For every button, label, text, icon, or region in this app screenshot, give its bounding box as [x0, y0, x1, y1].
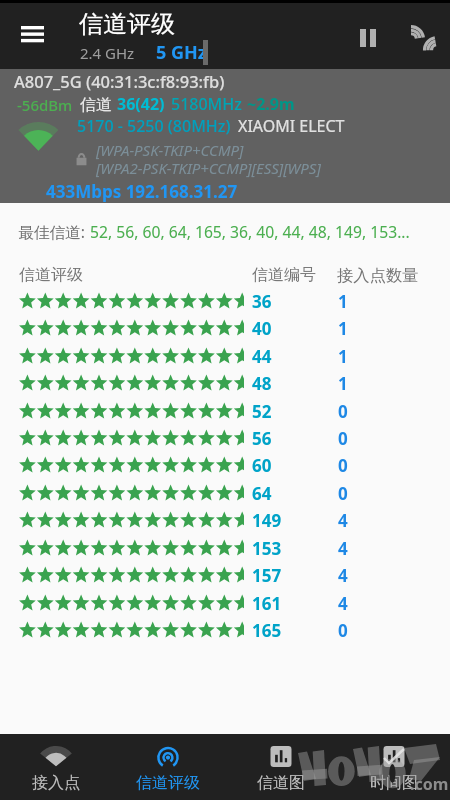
staticText: A807_5G (40:31:3c:f8:93:fb) [14, 70, 225, 92]
staticText: 接入点数量 [337, 265, 419, 286]
button[interactable]: 40 [0, 315, 450, 342]
staticText: 2.4 GHz [80, 43, 135, 63]
staticText: 36(42) [117, 93, 165, 115]
staticText: [WPA2-PSK-TKIP+CCMP][ESS][WPS] [96, 158, 321, 178]
staticText: 1 [338, 317, 348, 340]
staticText: 165 [252, 619, 282, 642]
staticText: 161 [252, 592, 282, 615]
button[interactable]: 2.4 GHz [80, 43, 135, 63]
button[interactable]: 161 [0, 590, 450, 617]
staticText: ~2.9m [247, 93, 295, 115]
button[interactable]: 60 [0, 452, 450, 479]
staticText: 157 [252, 564, 282, 587]
button[interactable]: A807_5G (40:31:3c:f8:93:fb) [0, 69, 450, 203]
button[interactable]: 56 [0, 425, 450, 452]
staticText: 4 [338, 592, 348, 615]
staticText: 52 [252, 400, 272, 423]
staticText: 信道评级 [79, 9, 175, 39]
staticText: 信道评级 [136, 773, 200, 793]
staticText: 最佳信道: [18, 221, 90, 242]
staticText: .com [410, 773, 449, 795]
staticText: 4 [338, 537, 348, 560]
staticText: 149 [252, 509, 282, 532]
button[interactable]: Pause scanning [345, 15, 391, 61]
button[interactable]: 48 [0, 370, 450, 397]
button[interactable]: 信道图 [224, 734, 337, 800]
staticText: 信道评级 [19, 265, 83, 285]
button[interactable]: 44 [0, 343, 450, 370]
button[interactable]: 149 [0, 507, 450, 534]
staticText: [WPA-PSK-TKIP+CCMP] [96, 140, 244, 160]
staticText: 0 [338, 427, 348, 450]
button[interactable]: 5 GHz [156, 40, 207, 65]
staticText: 36 [252, 290, 272, 313]
staticText: 52, 56, 60, 64, 165, 36, 40, 44, 48, 149… [90, 221, 410, 242]
staticText: 接入点 [32, 773, 80, 793]
button[interactable]: 接入点 [0, 734, 112, 800]
staticText: 64 [252, 482, 272, 505]
staticText: 0 [338, 400, 348, 423]
staticText: 5180MHz [171, 93, 242, 115]
button[interactable]: 52 [0, 398, 450, 425]
staticText: 153 [252, 537, 282, 560]
button[interactable]: 153 [0, 535, 450, 562]
staticText: 40 [252, 317, 272, 340]
staticText: 信道编号 [252, 265, 316, 285]
button[interactable]: Open navigation drawer [10, 12, 54, 56]
staticText: 1 [338, 345, 348, 368]
staticText: 4 [338, 509, 348, 532]
button[interactable]: 时间图 [337, 734, 450, 800]
staticText: 时间图 [370, 773, 418, 793]
staticText: 5170 - 5250 (80MHz) [77, 115, 231, 137]
button[interactable]: Scan WiFi [401, 15, 447, 61]
staticText: 信道 [80, 95, 112, 115]
staticText: 1 [338, 372, 348, 395]
button[interactable]: 157 [0, 562, 450, 589]
staticText: 433Mbps 192.168.31.27 [46, 180, 238, 203]
button[interactable]: 信道评级 [112, 734, 224, 800]
staticText: 0 [338, 454, 348, 477]
staticText: 1 [338, 290, 348, 313]
staticText: 48 [252, 372, 272, 395]
staticText: -56dBm [17, 95, 73, 115]
staticText: 56 [252, 427, 272, 450]
staticText: 60 [252, 454, 272, 477]
button[interactable]: 36 [0, 288, 450, 315]
staticText: 信道图 [257, 773, 305, 793]
button[interactable]: 165 [0, 617, 450, 644]
staticText: XIAOMI ELECT [238, 115, 345, 137]
staticText: 4 [338, 564, 348, 587]
staticText: 0 [338, 482, 348, 505]
staticText: 44 [252, 345, 272, 368]
button[interactable]: 64 [0, 480, 450, 507]
staticText: 5 GHz [156, 40, 207, 65]
staticText: 0 [338, 619, 348, 642]
